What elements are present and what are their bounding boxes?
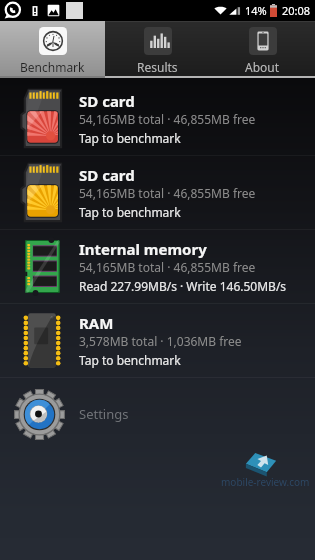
button[interactable]: Internal memory [0,230,315,303]
staticText: Internal memory [79,239,207,259]
staticText: mobile-review.com [221,475,310,489]
staticText: 54,165MB total · 46,855MB free [79,185,256,201]
staticText: RAM [79,313,114,333]
staticText: Settings [79,405,129,423]
staticText: 14% [245,3,267,18]
button[interactable]: RAM [0,304,315,377]
button[interactable]: SD card [0,82,315,155]
button[interactable]: Results [105,21,210,78]
button[interactable]: Benchmark [0,21,105,78]
staticText: Results [137,59,178,75]
staticText: 54,165MB total · 46,855MB free [79,111,256,127]
staticText: Tap to benchmark [79,204,181,220]
staticText: Read 227.99MB/s · Write 146.50MB/s [79,278,287,294]
staticText: 20:08 [282,3,311,18]
staticText: About [245,59,280,75]
staticText: SD card [79,91,135,111]
button[interactable]: SD card [0,156,315,229]
button[interactable]: About [210,21,315,78]
staticText: Tap to benchmark [79,352,181,368]
staticText: SD card [79,165,135,185]
staticText: Benchmark [20,59,85,75]
staticText: 3,578MB total · 1,036MB free [79,333,242,349]
staticText: 54,165MB total · 46,855MB free [79,259,256,275]
button[interactable]: Settings [0,378,315,450]
staticText: Tap to benchmark [79,130,181,146]
